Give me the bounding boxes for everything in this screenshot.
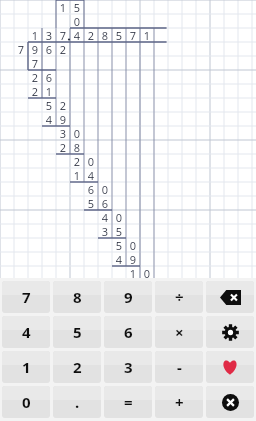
button[interactable]: Favorite bbox=[206, 351, 254, 383]
button[interactable]: 9 bbox=[104, 281, 152, 313]
staticText: = bbox=[124, 392, 133, 412]
staticText: × bbox=[175, 322, 184, 342]
button[interactable]: Backspace bbox=[206, 281, 254, 313]
staticText: 7 bbox=[22, 287, 31, 307]
staticText: 1 bbox=[22, 357, 31, 377]
button[interactable]: 8 bbox=[53, 281, 101, 313]
button[interactable]: 6 bbox=[104, 316, 152, 348]
button[interactable]: 3 bbox=[104, 351, 152, 383]
staticText: + bbox=[175, 392, 184, 412]
staticText: 5 bbox=[73, 322, 82, 342]
staticText: 4 bbox=[22, 322, 31, 342]
button[interactable]: = bbox=[104, 386, 152, 418]
button[interactable]: 1 bbox=[2, 351, 50, 383]
button[interactable]: Settings bbox=[206, 316, 254, 348]
button[interactable]: ÷ bbox=[155, 281, 203, 313]
button[interactable]: × bbox=[155, 316, 203, 348]
button[interactable]: 5 bbox=[53, 316, 101, 348]
staticText: 8 bbox=[73, 287, 82, 307]
button[interactable]: 4 bbox=[2, 316, 50, 348]
staticText: . bbox=[75, 392, 80, 412]
staticText: 9 bbox=[124, 287, 133, 307]
button[interactable]: Clear bbox=[206, 386, 254, 418]
staticText: 2 bbox=[73, 357, 82, 377]
button[interactable]: + bbox=[155, 386, 203, 418]
staticText: 3 bbox=[124, 357, 133, 377]
staticText: ÷ bbox=[175, 287, 184, 307]
button[interactable]: 7 bbox=[2, 281, 50, 313]
staticText: 0 bbox=[22, 392, 31, 412]
staticText: - bbox=[177, 357, 182, 377]
button[interactable]: 0 bbox=[2, 386, 50, 418]
staticText: 6 bbox=[124, 322, 133, 342]
button[interactable]: - bbox=[155, 351, 203, 383]
button[interactable]: . bbox=[53, 386, 101, 418]
button[interactable]: 2 bbox=[53, 351, 101, 383]
